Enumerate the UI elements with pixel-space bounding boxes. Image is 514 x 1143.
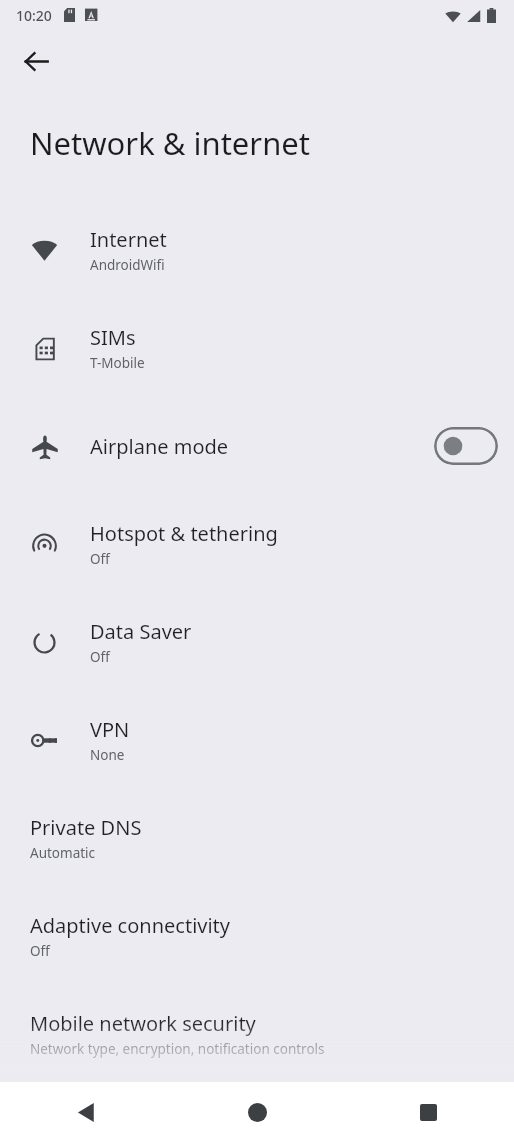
staticText: Off <box>90 648 110 666</box>
staticText: Mobile network security <box>30 1010 256 1037</box>
button[interactable]: Private DNS <box>0 789 514 887</box>
staticText: Adaptive connectivity <box>30 912 231 939</box>
staticText: Off <box>30 942 50 960</box>
button[interactable]: Hotspot & tethering <box>0 495 514 593</box>
staticText: Data Saver <box>90 618 192 645</box>
button[interactable]: Internet <box>0 201 514 299</box>
button[interactable]: VPN <box>0 691 514 789</box>
staticText: T-Mobile <box>90 354 145 372</box>
staticText: Off <box>90 550 110 568</box>
staticText: 10:20 <box>16 6 52 25</box>
staticText: Private DNS <box>30 814 142 841</box>
button[interactable]: Data Saver <box>0 593 514 691</box>
staticText: VPN <box>90 716 130 743</box>
button[interactable]: SIMs <box>0 299 514 397</box>
button[interactable]: Recent apps <box>343 1082 514 1143</box>
button[interactable]: Mobile network security <box>0 985 514 1083</box>
staticText: SIMs <box>90 324 136 351</box>
button[interactable]: Home <box>172 1082 343 1143</box>
staticText: AndroidWifi <box>90 256 165 274</box>
staticText: Hotspot & tethering <box>90 520 278 547</box>
staticText: Network & internet <box>30 122 310 164</box>
staticText: None <box>90 746 125 764</box>
button[interactable]: Back <box>10 35 62 87</box>
staticText: Network type, encryption, notification c… <box>30 1040 325 1058</box>
button[interactable]: Airplane mode toggle <box>434 427 498 465</box>
staticText: Airplane mode <box>90 433 229 460</box>
staticText: Internet <box>90 226 167 253</box>
button[interactable]: Back <box>0 1082 172 1143</box>
button[interactable]: Airplane mode <box>0 397 514 495</box>
staticText: Automatic <box>30 844 96 862</box>
button[interactable]: Adaptive connectivity <box>0 887 514 985</box>
